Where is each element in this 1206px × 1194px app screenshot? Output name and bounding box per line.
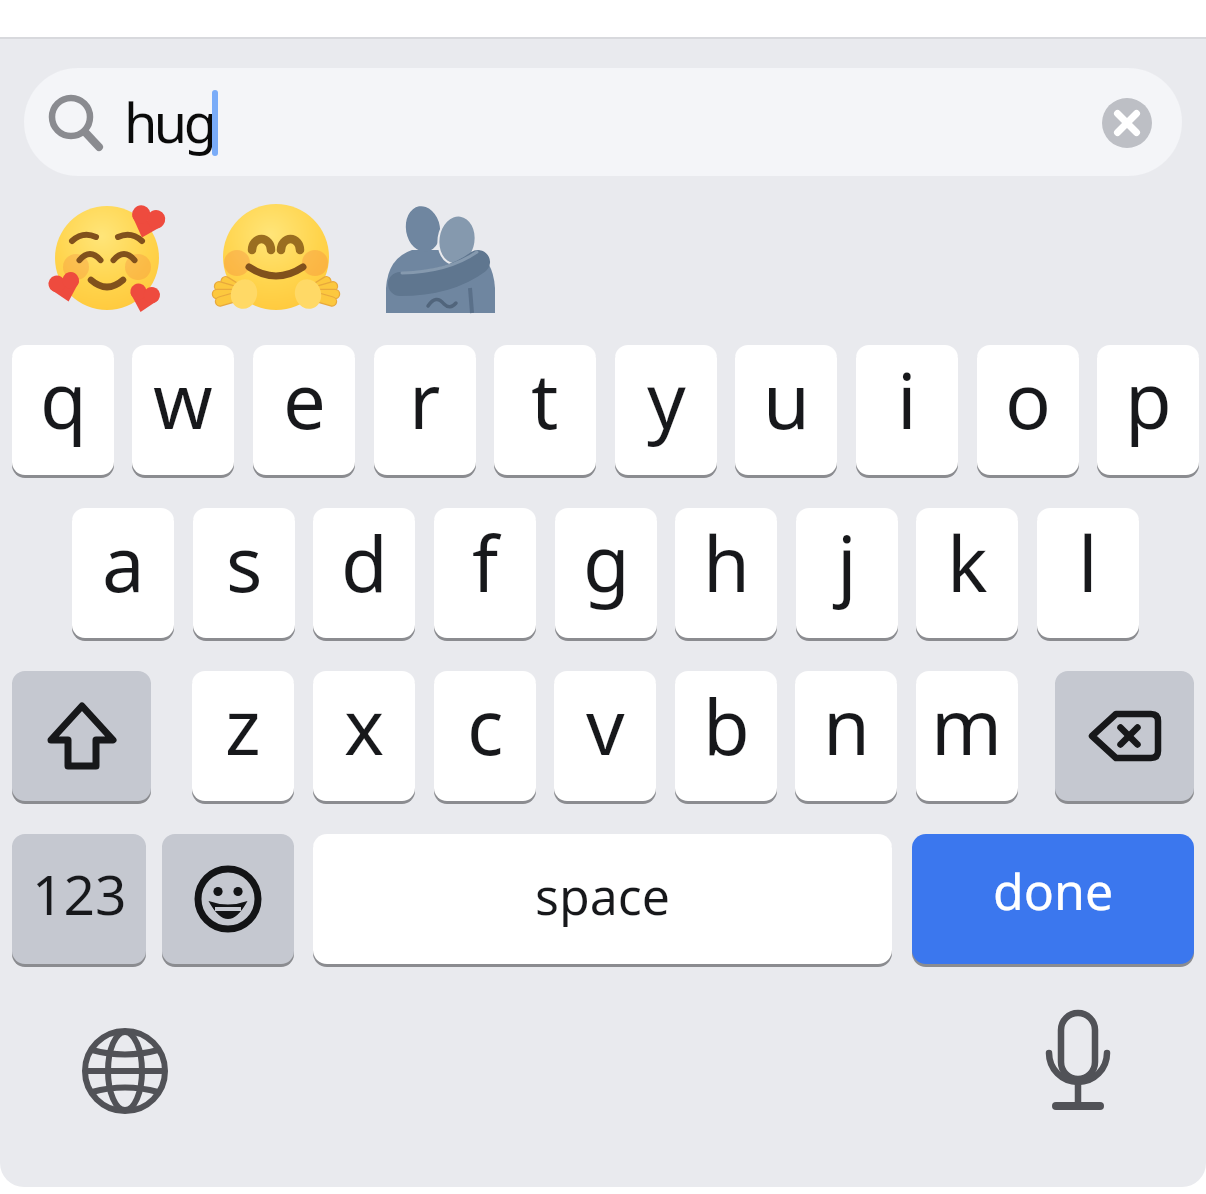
staticText: j	[837, 511, 857, 615]
button[interactable]: e	[253, 345, 355, 475]
button[interactable]: d	[313, 508, 415, 638]
staticText: e	[283, 348, 326, 452]
button[interactable]: g	[555, 508, 657, 638]
button[interactable]: 123	[12, 834, 146, 964]
button[interactable]: a	[72, 508, 174, 638]
staticText: hug	[124, 85, 214, 159]
staticText: x	[344, 674, 385, 778]
button[interactable]	[12, 671, 151, 801]
button[interactable]: u	[735, 345, 837, 475]
staticText: v	[586, 674, 625, 778]
button[interactable]: x	[313, 671, 415, 801]
staticText: y	[647, 348, 686, 452]
staticText: q	[40, 348, 87, 452]
staticText: d	[341, 511, 388, 615]
button[interactable]: f	[434, 508, 536, 638]
button[interactable]	[1055, 671, 1194, 801]
staticText: r	[409, 348, 441, 452]
staticText: b	[703, 674, 750, 778]
button[interactable]: y	[615, 345, 717, 475]
button[interactable]: p	[1097, 345, 1199, 475]
button[interactable]: k	[916, 508, 1018, 638]
button[interactable]: n	[795, 671, 897, 801]
staticText: k	[947, 511, 988, 615]
button[interactable]: r	[374, 345, 476, 475]
staticText: n	[823, 674, 870, 778]
button[interactable]: v	[554, 671, 656, 801]
staticText: m	[931, 674, 1003, 778]
staticText: t	[531, 348, 559, 452]
button[interactable]: q	[12, 345, 114, 475]
button[interactable]: done	[912, 834, 1194, 964]
button[interactable]: t	[494, 345, 596, 475]
button[interactable]	[162, 834, 294, 964]
staticText: w	[153, 348, 213, 452]
staticText: h	[703, 511, 750, 615]
button[interactable]	[24, 68, 1182, 176]
button[interactable]: w	[132, 345, 234, 475]
staticText: g	[583, 511, 630, 615]
staticText: l	[1078, 511, 1098, 615]
button[interactable]: i	[856, 345, 958, 475]
staticText: done	[993, 857, 1114, 925]
staticText: i	[897, 348, 917, 452]
button[interactable]: m	[916, 671, 1018, 801]
staticText: s	[226, 511, 263, 615]
button[interactable]: b	[675, 671, 777, 801]
staticText: c	[467, 674, 504, 778]
button[interactable]: z	[192, 671, 294, 801]
button[interactable]: space	[313, 834, 892, 964]
staticText: p	[1125, 348, 1172, 452]
button[interactable]: c	[434, 671, 536, 801]
staticText: 123	[32, 856, 127, 931]
staticText: a	[102, 511, 145, 615]
button[interactable]: h	[675, 508, 777, 638]
staticText: o	[1005, 348, 1051, 452]
staticText: space	[535, 862, 670, 930]
button[interactable]: j	[796, 508, 898, 638]
staticText: u	[763, 348, 810, 452]
button[interactable]: o	[977, 345, 1079, 475]
staticText: z	[225, 674, 261, 778]
button[interactable]: l	[1037, 508, 1139, 638]
staticText: f	[472, 511, 499, 615]
button[interactable]: s	[193, 508, 295, 638]
